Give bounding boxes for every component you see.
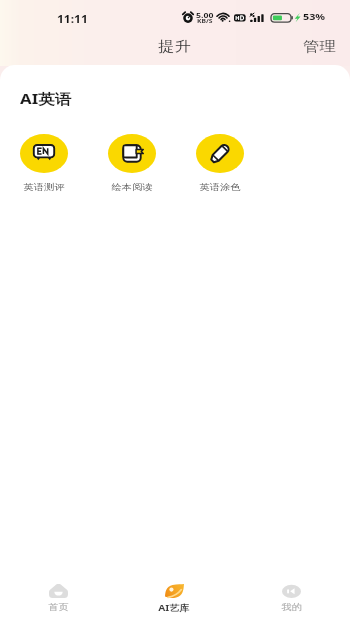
staticText: AI艺库 <box>158 602 191 614</box>
button[interactable]: 绘本阅读 <box>88 134 176 193</box>
staticText: 53% <box>303 10 326 22</box>
button[interactable]: AI艺库 <box>116 567 233 622</box>
button[interactable]: 我的 <box>233 567 350 622</box>
staticText: 英语测评 <box>24 182 64 193</box>
button[interactable]: 提升 <box>161 38 188 55</box>
staticText: AI英语 <box>20 89 73 108</box>
button[interactable]: 英语测评 <box>0 134 88 193</box>
staticText: 我的 <box>281 602 302 613</box>
button[interactable]: 管理 <box>306 38 333 55</box>
staticText: 绘本阅读 <box>112 182 152 193</box>
staticText: 首页 <box>48 602 69 613</box>
staticText: KB/S <box>197 18 213 25</box>
button[interactable]: 英语涂色 <box>176 134 264 193</box>
button[interactable]: 首页 <box>0 567 116 622</box>
staticText: 5.00 <box>196 11 213 20</box>
staticText: 11:11 <box>57 12 88 26</box>
staticText: 英语涂色 <box>200 182 240 193</box>
